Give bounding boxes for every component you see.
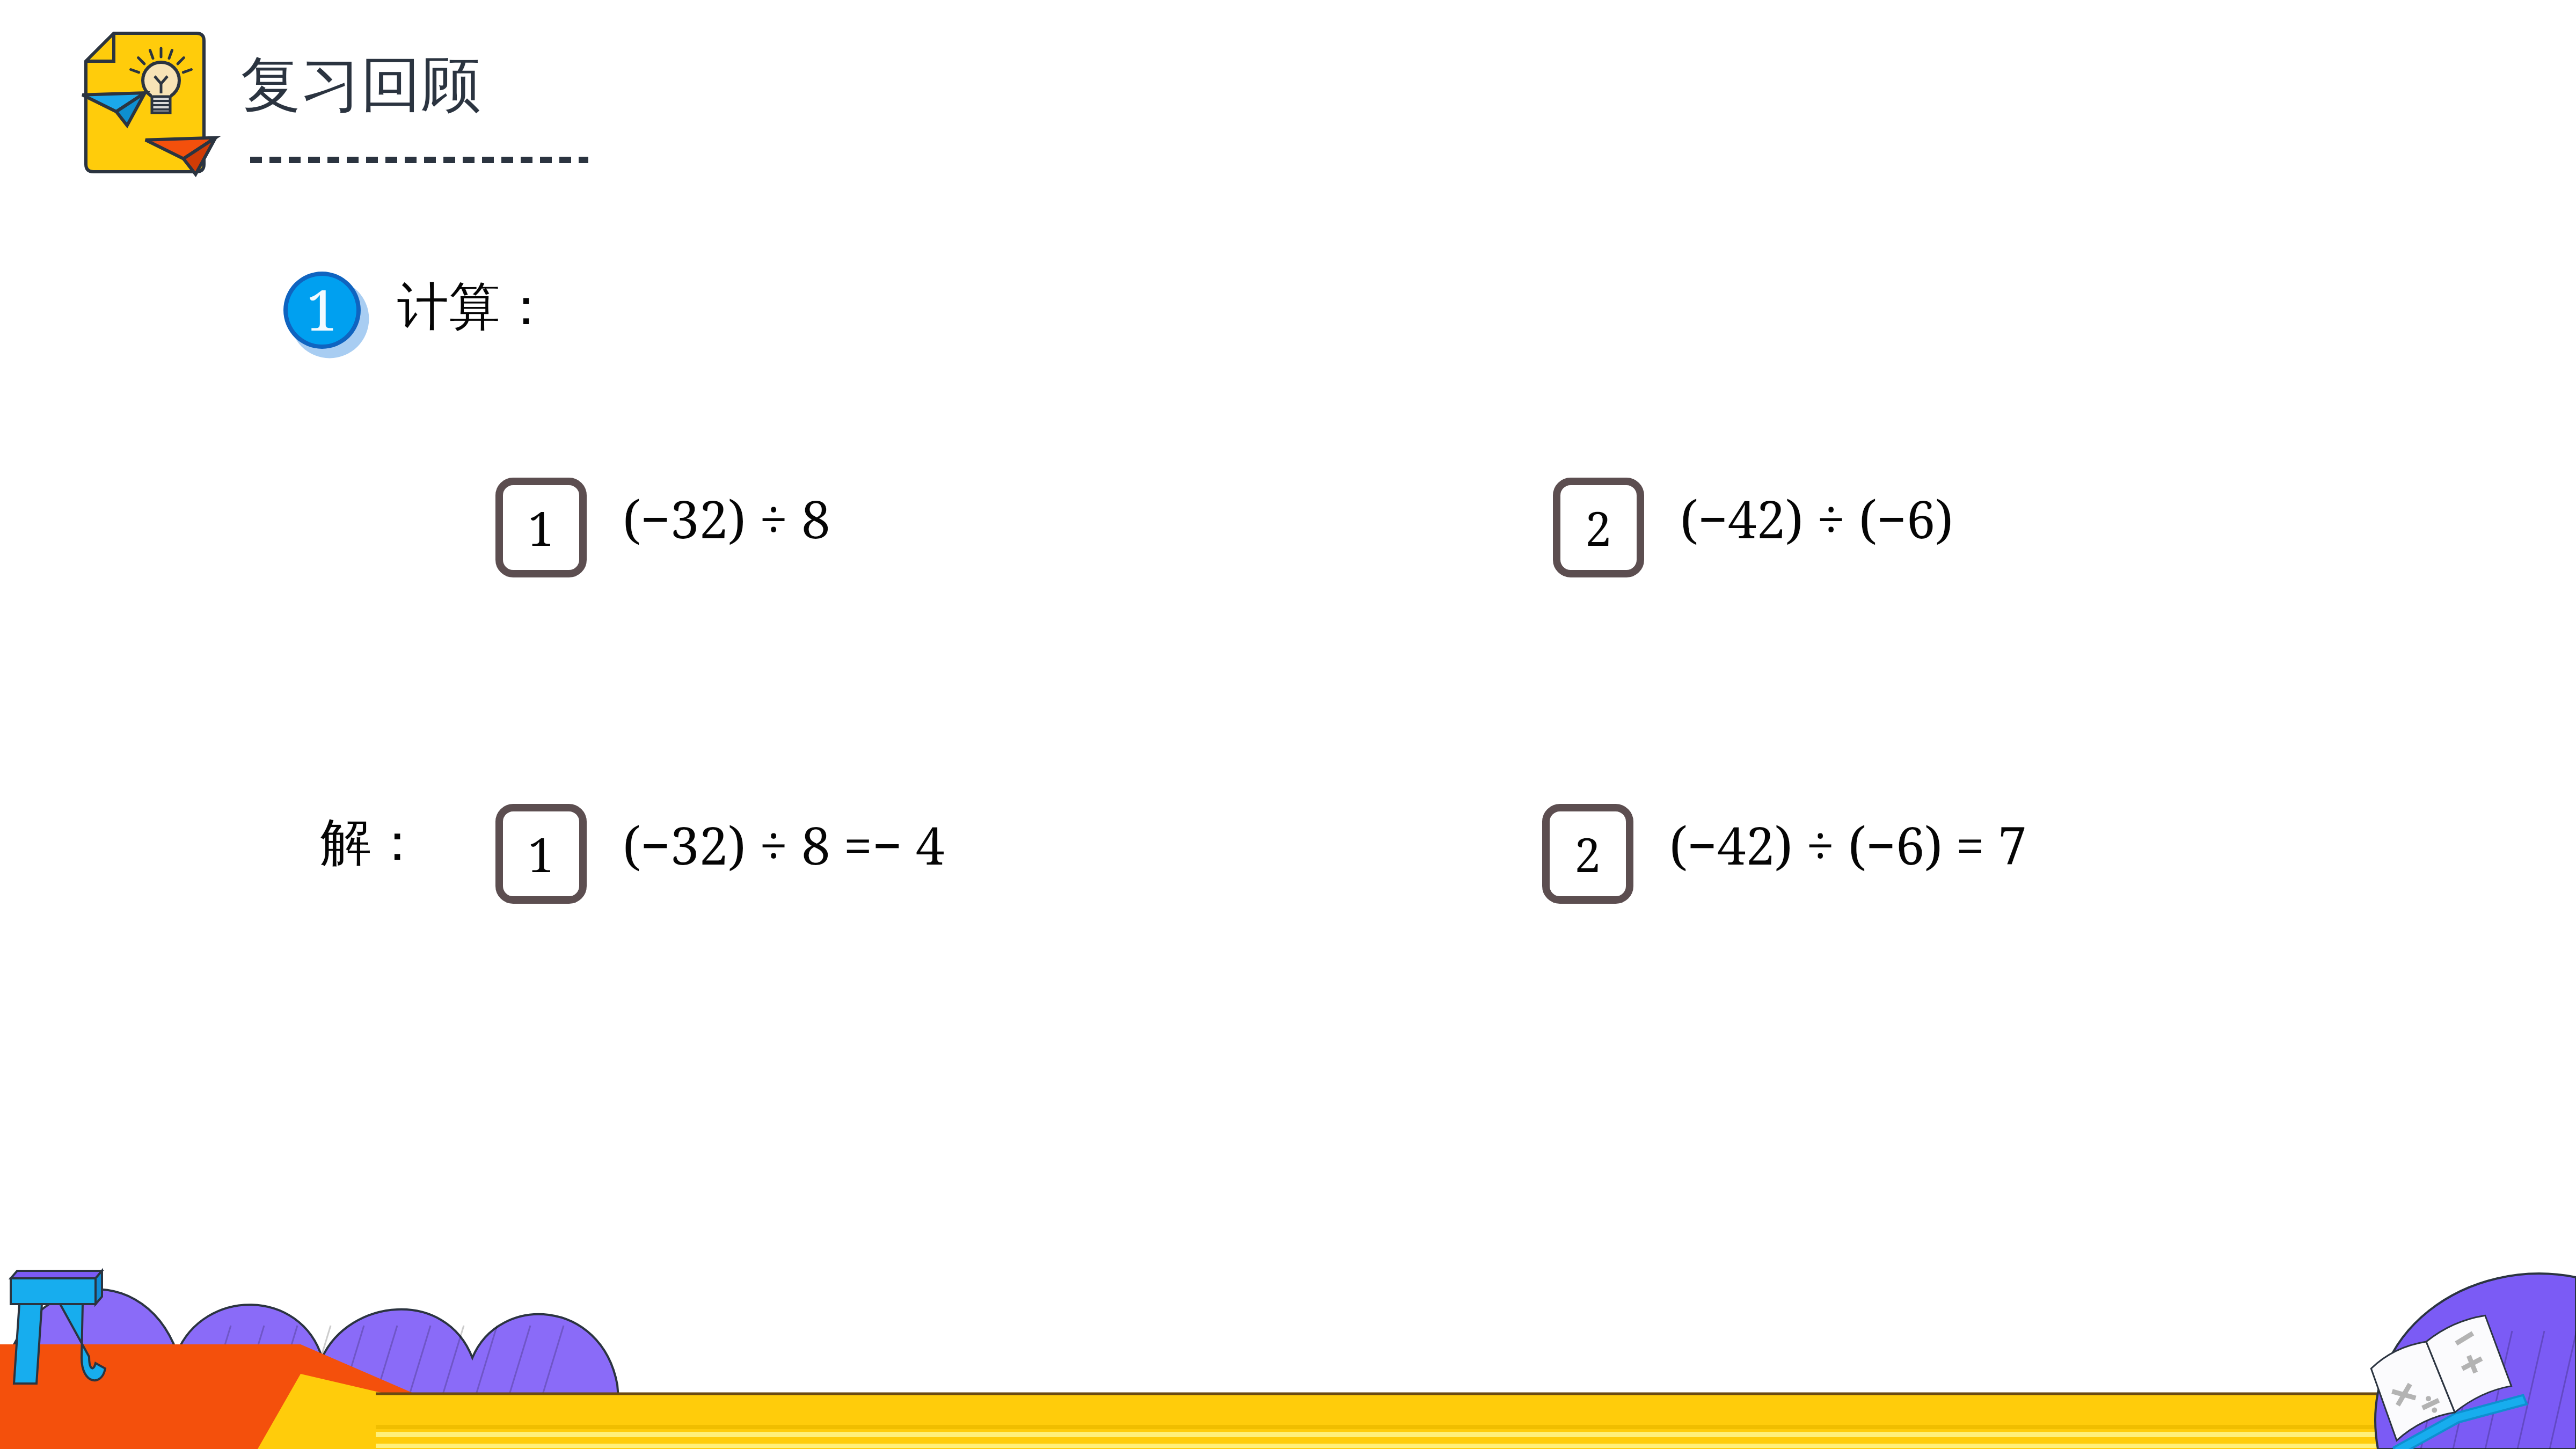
other: Review slide: integer division practice bbox=[0, 0, 2576, 1449]
button[interactable]: Review slide: integer division practice bbox=[0, 0, 2576, 1449]
